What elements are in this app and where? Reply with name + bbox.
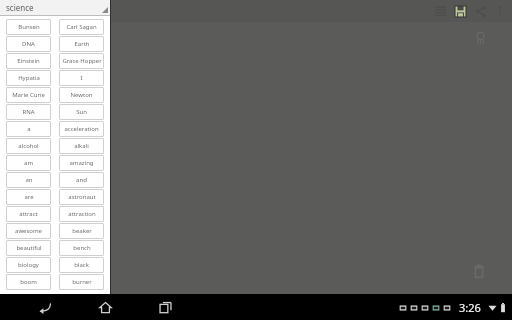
staticText: Bunsen [18,23,40,31]
staticText: am [24,159,33,167]
staticText: alkali [74,142,89,150]
staticText: Marie Curie [12,91,45,99]
button[interactable]: biology [6,257,51,273]
staticText: and [76,176,87,184]
staticText: Grace Hopper [62,57,102,65]
button[interactable]: Grace Hopper [59,53,104,69]
button[interactable]: are [6,189,51,205]
button[interactable]: science [0,0,110,15]
button[interactable]: beautiful [6,240,51,256]
button[interactable]: Einstein [6,53,51,69]
staticText: burner [72,278,92,286]
staticText: Hypatia [18,74,40,82]
button[interactable]: bench [59,240,104,256]
staticText: a [27,125,31,133]
staticText: acceleration [64,125,99,133]
button[interactable]: alcohol [6,138,51,154]
button[interactable]: Earth [59,36,104,52]
button[interactable]: acceleration [59,121,104,137]
button[interactable]: Home [94,296,116,318]
staticText: Earth [74,40,90,48]
button[interactable]: RNA [6,104,51,120]
button[interactable]: an [6,172,51,188]
button[interactable]: burner [59,274,104,290]
staticText: 3:26 [459,300,481,315]
button[interactable]: Recent apps [154,296,176,318]
button[interactable]: astronaut [59,189,104,205]
staticText: science [6,2,34,13]
button[interactable]: alkali [59,138,104,154]
staticText: amazing [69,159,94,167]
button[interactable]: I [59,70,104,86]
staticText: DNA [22,40,35,48]
staticText: beautiful [16,244,42,252]
button[interactable]: boom [6,274,51,290]
button[interactable]: am [6,155,51,171]
staticText: biology [18,261,39,269]
button[interactable]: Sun [59,104,104,120]
staticText: are [24,193,34,201]
staticText: I [80,74,83,82]
staticText: Carl Sagan [66,23,97,31]
staticText: awesome [15,227,42,235]
button[interactable]: DNA [6,36,51,52]
button[interactable]: black [59,257,104,273]
staticText: Einstein [17,57,40,65]
button[interactable]: Newton [59,87,104,103]
button[interactable]: Save [450,1,470,21]
button[interactable]: attract [6,206,51,222]
button[interactable]: and [59,172,104,188]
button[interactable]: Carl Sagan [59,19,104,35]
staticText: boom [20,278,37,286]
button[interactable]: Award [470,28,490,48]
staticText: an [25,176,33,184]
staticText: attraction [68,210,96,218]
staticText: attract [19,210,38,218]
button[interactable]: Delete [468,260,490,282]
staticText: bench [73,244,91,252]
button[interactable]: Back [34,296,56,318]
staticText: Sun [76,108,87,116]
button[interactable]: attraction [59,206,104,222]
button[interactable]: Marie Curie [6,87,51,103]
button[interactable]: amazing [59,155,104,171]
staticText: black [74,261,89,269]
staticText: alcohol [18,142,39,150]
button[interactable]: a [6,121,51,137]
button[interactable]: awesome [6,223,51,239]
staticText: RNA [22,108,35,116]
button[interactable]: beaker [59,223,104,239]
staticText: astronaut [68,193,96,201]
staticText: Newton [70,91,93,99]
button[interactable]: Hypatia [6,70,51,86]
staticText: beaker [72,227,92,235]
button[interactable]: Bunsen [6,19,51,35]
